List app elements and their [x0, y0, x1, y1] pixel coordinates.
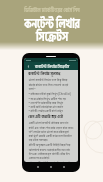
staticText: কেন এটি জরুরি হয়ে ওঠে — [28, 114, 64, 120]
staticText: কনটেন্ট লিখার — [24, 13, 80, 35]
button[interactable]: Back — [26, 64, 30, 68]
staticText: কনটেন্ট লিখার মূলমন্ত্র — [28, 71, 61, 77]
staticText: প্রতিটি অনুচ্ছেদে একটি নির্দিষ্ট বিষয় ন… — [29, 143, 73, 160]
staticText: একটি ভালো কনটেন্ট পাঠকের মনে দাগ কাটে এব… — [29, 121, 73, 142]
staticText: শেষে একটি ছোট উপসংহার দিন যাতে পাঠক পুরো… — [29, 161, 73, 162]
staticText: ডিজিটাল মার্কেটিংয়ের কোর্স নিন — [24, 6, 80, 15]
staticText: সিক্রেটস — [36, 26, 68, 48]
staticText: ভালো কনটেন্ট লিখতে হলে কিছু বিষয় মাথায়… — [29, 78, 73, 91]
staticText: কনটেন্ট লিখার সিক্রেটস — [35, 63, 70, 70]
staticText: • পাঠকের চাহিদা বুঝে লিখুন (Checklist) •… — [29, 92, 71, 113]
